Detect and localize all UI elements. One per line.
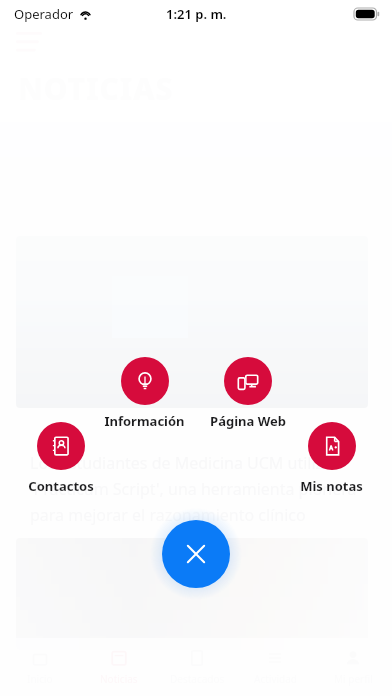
button[interactable]: Contactos xyxy=(18,422,104,495)
staticText: 'Practicum Script', una herramienta pion… xyxy=(30,478,357,500)
staticText: Página Web xyxy=(210,412,286,430)
other: Información xyxy=(121,357,169,405)
button[interactable]: Página Web xyxy=(200,357,296,430)
other: Mis notas xyxy=(308,422,356,470)
staticText: Información xyxy=(104,412,185,430)
other: Contactos xyxy=(37,422,85,470)
staticText: 1:21 p. m. xyxy=(166,5,227,23)
other: Página Web xyxy=(224,357,272,405)
staticText: Mis notas xyxy=(300,477,363,495)
staticText: Operador xyxy=(14,5,74,23)
staticText: Contactos xyxy=(28,477,94,495)
staticText: para mejorar el razonamiento clínico xyxy=(30,504,306,526)
button[interactable]: Cerrar menú xyxy=(162,520,230,588)
button[interactable]: Información xyxy=(97,357,192,430)
button[interactable]: Mis notas xyxy=(289,422,374,495)
staticText: Los estudiantes de Medicina UCM utilizan xyxy=(30,452,342,474)
